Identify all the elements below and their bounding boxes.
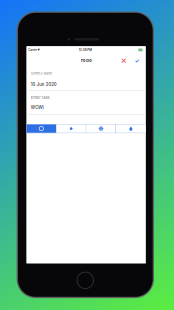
button[interactable]: In progress — [116, 280, 174, 307]
staticText: Select date — [39, 119, 103, 134]
button[interactable] — [27, 180, 174, 250]
button[interactable] — [27, 104, 174, 179]
button[interactable]: Open — [27, 280, 115, 307]
